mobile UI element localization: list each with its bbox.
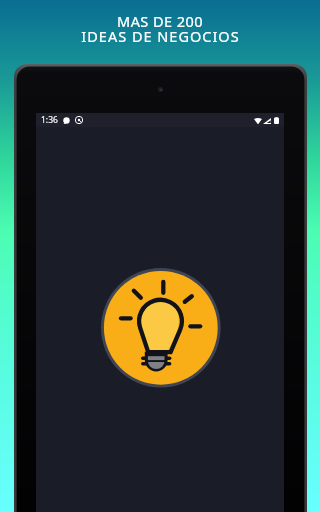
staticText: 1:36 bbox=[41, 114, 58, 126]
staticText: MAS DE 200 bbox=[117, 11, 203, 31]
button[interactable]: Ideas de negocios logo bbox=[101, 268, 221, 388]
staticText: IDEAS DE NEGOCIOS bbox=[81, 26, 240, 46]
